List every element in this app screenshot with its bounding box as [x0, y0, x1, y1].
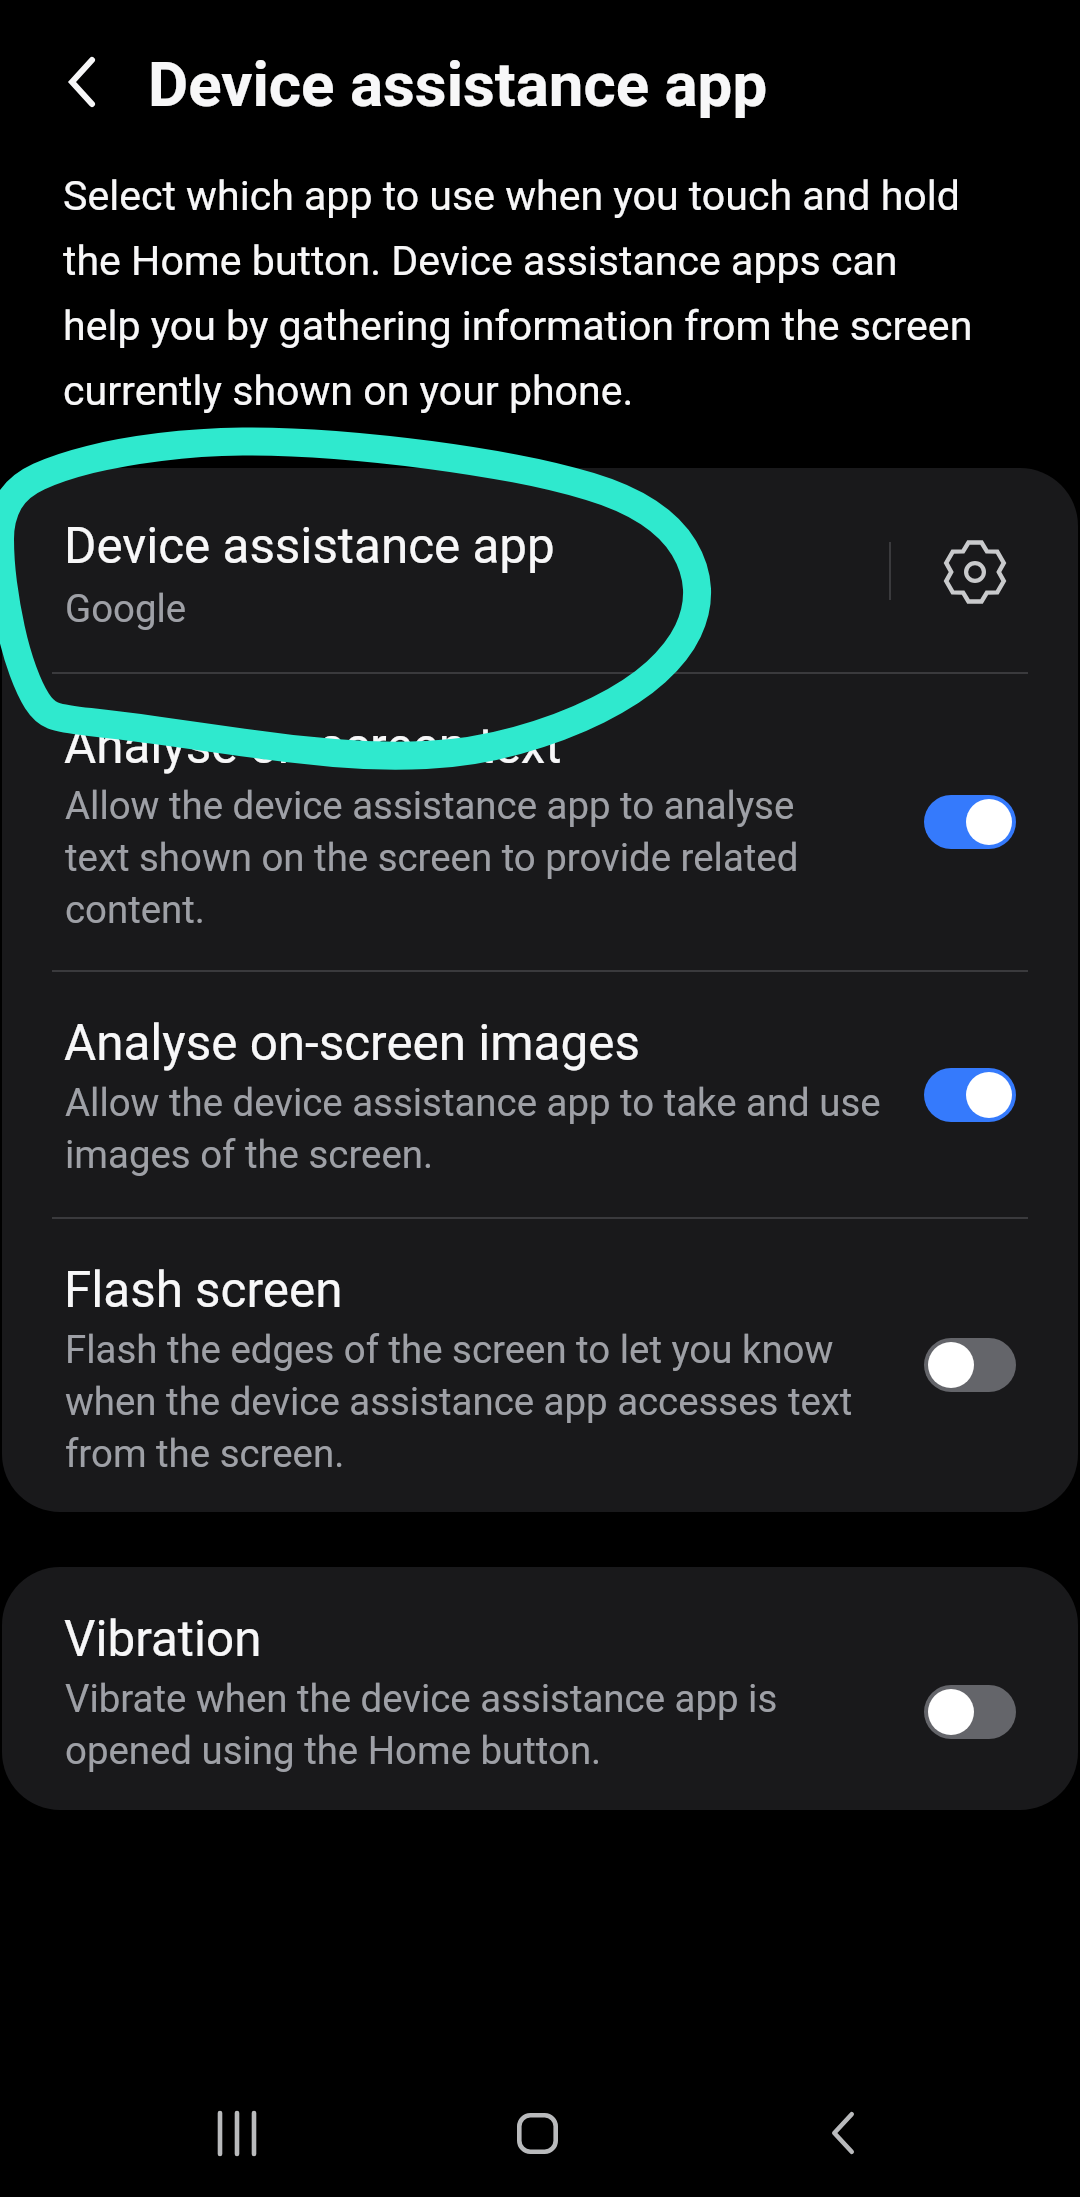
- button[interactable]: Flash screen, off: [924, 1338, 1016, 1392]
- staticText: Flash the edges of the screen to let you…: [65, 1322, 853, 1478]
- button[interactable]: Navigate up: [32, 32, 132, 132]
- staticText: Allow the device assistance app to analy…: [65, 778, 799, 934]
- button[interactable]: Vibration: [2, 1567, 1078, 1810]
- button[interactable]: Recent apps: [157, 2073, 317, 2193]
- button[interactable]: Analyse on-screen text: [2, 672, 1078, 970]
- button[interactable]: Vibration, off: [924, 1685, 1016, 1739]
- button[interactable]: Analyse on-screen images, on: [924, 1068, 1016, 1122]
- staticText: Vibration: [64, 1610, 262, 1668]
- button[interactable]: Device assistance app settings: [900, 468, 1078, 672]
- staticText: Analyse on-screen images: [64, 1014, 640, 1072]
- staticText: Allow the device assistance app to take …: [65, 1075, 881, 1179]
- staticText: Flash screen: [64, 1261, 343, 1319]
- button[interactable]: Home: [457, 2073, 617, 2193]
- staticText: Device assistance app: [64, 517, 555, 575]
- staticText: Google: [65, 586, 187, 631]
- button[interactable]: Device assistance app: [2, 468, 878, 672]
- staticText: Vibrate when the device assistance app i…: [65, 1671, 778, 1775]
- staticText: Analyse on-screen text: [64, 717, 562, 775]
- button[interactable]: Analyse on-screen text, on: [924, 795, 1016, 849]
- staticText: Select which app to use when you touch a…: [63, 159, 973, 419]
- button[interactable]: Analyse on-screen images: [2, 970, 1078, 1217]
- staticText: Device assistance app: [148, 49, 768, 121]
- button[interactable]: Flash screen: [2, 1217, 1078, 1512]
- button[interactable]: Back: [763, 2073, 923, 2193]
